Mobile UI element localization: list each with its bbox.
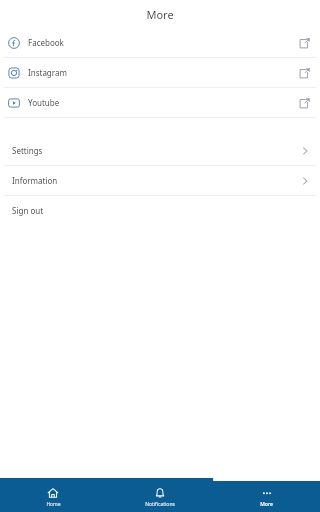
staticText: Settings <box>12 145 298 156</box>
staticText: Information <box>12 175 298 186</box>
button[interactable]: Sign out <box>0 196 320 225</box>
staticText: Notifications <box>145 501 175 508</box>
staticText: More <box>146 7 174 22</box>
staticText: Sign out <box>12 205 298 216</box>
button[interactable]: Open Instagram <box>296 65 312 81</box>
staticText: More <box>260 501 273 508</box>
button[interactable]: Open Facebook <box>296 35 312 51</box>
staticText: Youtube <box>28 97 296 108</box>
button[interactable]: More <box>213 478 320 512</box>
button[interactable]: Instagram <box>0 58 320 87</box>
button[interactable]: Notifications <box>106 478 213 512</box>
button[interactable]: Information <box>0 166 320 195</box>
staticText: Facebook <box>28 37 296 48</box>
button[interactable]: Settings <box>0 136 320 165</box>
button[interactable]: Home <box>0 478 106 512</box>
button[interactable]: Youtube <box>0 88 320 117</box>
staticText: Home <box>46 501 61 508</box>
staticText: Instagram <box>28 67 296 78</box>
button[interactable]: Open Youtube <box>296 95 312 111</box>
button[interactable]: Facebook <box>0 28 320 57</box>
